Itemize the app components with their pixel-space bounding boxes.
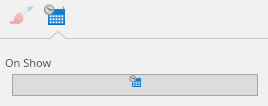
button[interactable]: Theme: [10, 4, 34, 25]
button[interactable]: Schedule: [44, 5, 65, 25]
staticText: On Show: [5, 55, 52, 70]
button[interactable]: On Show schedule: [12, 74, 258, 96]
